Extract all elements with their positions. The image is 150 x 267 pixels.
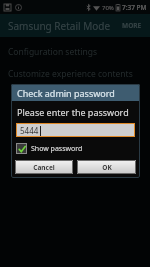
staticText: Cancel xyxy=(33,163,55,172)
button[interactable]: Show password xyxy=(16,143,83,154)
staticText: Check admin password xyxy=(17,87,115,99)
button[interactable]: 5444 xyxy=(16,123,135,137)
staticText: Please enter the password xyxy=(17,106,129,118)
staticText: Show password xyxy=(31,144,83,154)
button[interactable]: Configuration settings xyxy=(0,41,150,63)
staticText: OK xyxy=(102,163,112,172)
staticText: Customize experience contents xyxy=(8,68,133,80)
staticText: 70% xyxy=(102,4,114,12)
staticText: 5444 xyxy=(20,125,39,136)
button[interactable]: Cancel xyxy=(15,160,73,174)
staticText: Samsung Retail Mode xyxy=(8,19,111,33)
button[interactable]: OK xyxy=(77,160,136,174)
staticText: 7:37 PM xyxy=(122,3,147,12)
staticText: MORE xyxy=(122,21,142,30)
button[interactable]: Customize experience contents xyxy=(0,63,150,85)
button[interactable]: MORE xyxy=(114,17,150,34)
staticText: Configuration settings xyxy=(8,46,98,58)
